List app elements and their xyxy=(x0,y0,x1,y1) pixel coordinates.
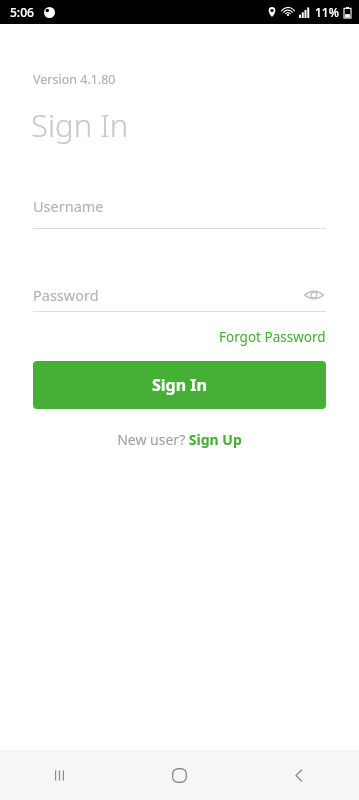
button[interactable]: Home xyxy=(119,750,239,800)
staticText: Forgot Password xyxy=(219,328,326,346)
staticText: Username xyxy=(33,196,104,216)
staticText: 5:06 xyxy=(10,4,34,20)
staticText: Version 4.1.80 xyxy=(33,71,116,88)
staticText: Sign In xyxy=(31,104,129,146)
button[interactable]: New user? Sign Up xyxy=(117,430,242,449)
button[interactable]: Back xyxy=(239,750,359,800)
button[interactable]: Username xyxy=(33,196,326,229)
button[interactable]: Sign In xyxy=(33,361,326,409)
staticText: Sign In xyxy=(152,374,207,396)
button[interactable]: Recent apps xyxy=(0,750,119,800)
button[interactable]: Forgot Password xyxy=(219,328,326,346)
button[interactable]: Show password xyxy=(302,283,326,307)
staticText: New user? Sign Up xyxy=(117,430,242,449)
staticText: 11% xyxy=(315,4,339,20)
button[interactable]: Password xyxy=(33,283,326,307)
staticText: Password xyxy=(33,285,302,305)
